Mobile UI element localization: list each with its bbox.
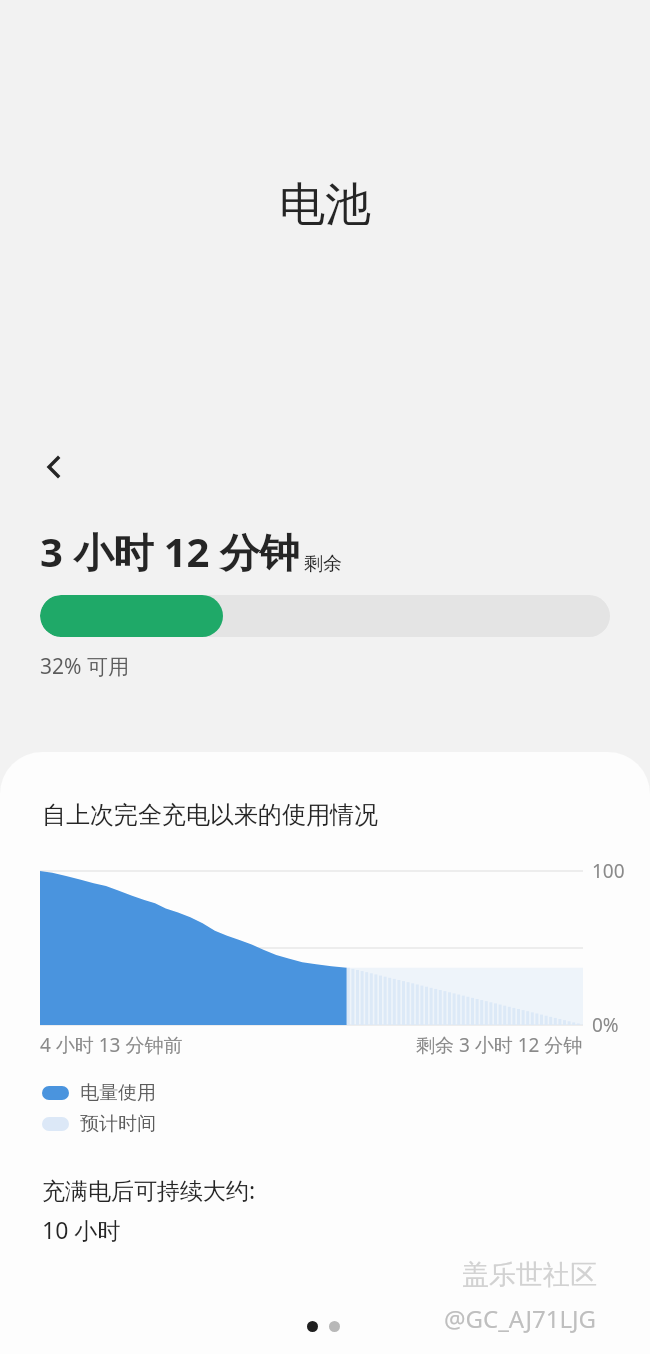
staticText: 剩余 3 小时 12 分钟 [416, 1032, 583, 1058]
staticText: 充满电后可持续大约: [42, 1174, 256, 1205]
button[interactable]: Back [26, 438, 84, 496]
staticText: @GC_AJ71LJG [444, 1302, 597, 1335]
button[interactable]: 预计时间 [42, 1112, 156, 1136]
staticText: 10 小时 [42, 1214, 121, 1245]
button[interactable]: 电量使用 [42, 1081, 156, 1105]
staticText: 32% 可用 [40, 652, 129, 681]
staticText: 盖乐世社区 [462, 1258, 597, 1292]
staticText: 预计时间 [80, 1112, 156, 1136]
staticText: 电量使用 [80, 1081, 156, 1105]
staticText: 剩余 [304, 552, 342, 576]
button[interactable] [329, 1321, 340, 1332]
staticText: 电池 [279, 176, 371, 234]
button[interactable] [307, 1321, 318, 1332]
staticText: 100 [592, 858, 625, 884]
staticText: 4 小时 13 分钟前 [40, 1032, 183, 1058]
staticText: 自上次完全充电以来的使用情况 [42, 800, 378, 830]
staticText: 3 小时 12 分钟 [40, 524, 300, 579]
staticText: 0% [592, 1012, 619, 1038]
